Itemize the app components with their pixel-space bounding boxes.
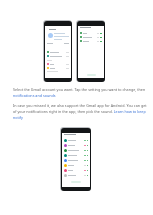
button[interactable] [47, 50, 69, 54]
staticText: In case you missed it, we also support t… [13, 103, 147, 108]
staticText: of your notifications right in the app, … [13, 109, 146, 114]
button[interactable] [64, 168, 88, 173]
button[interactable] [47, 66, 69, 70]
button[interactable] [64, 153, 88, 158]
button[interactable] [64, 163, 88, 168]
button[interactable] [47, 62, 69, 66]
button[interactable] [80, 39, 102, 43]
button[interactable] [80, 35, 102, 39]
button[interactable]: Phone screenshot [61, 128, 91, 191]
button[interactable] [64, 138, 88, 143]
button[interactable] [47, 54, 69, 58]
button[interactable]: Phone screenshot [44, 21, 72, 82]
button[interactable] [64, 173, 88, 178]
button[interactable] [64, 158, 88, 163]
button[interactable] [64, 143, 88, 148]
button[interactable]: Phone screenshot [77, 21, 105, 82]
staticText: notifications and sounds [13, 93, 56, 98]
button[interactable] [64, 148, 88, 153]
button[interactable] [80, 31, 102, 35]
staticText: notify [13, 115, 23, 120]
staticText: Select the Gmail account you want. Tap t… [13, 87, 153, 92]
button[interactable] [48, 33, 69, 40]
